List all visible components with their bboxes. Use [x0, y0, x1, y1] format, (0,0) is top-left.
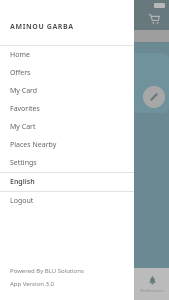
staticText: Places Nearby [10, 140, 57, 150]
button[interactable]: Cart [145, 10, 163, 28]
staticText: Home [10, 50, 30, 60]
staticText: App Version 3.0 [10, 280, 54, 288]
staticText: Notifications [140, 288, 164, 293]
button[interactable]: Settings [0, 154, 134, 172]
staticText: English [10, 177, 35, 187]
button[interactable]: Edit [143, 86, 165, 108]
button[interactable]: My Card [0, 82, 134, 100]
staticText: My Cart [10, 122, 36, 132]
staticText: Offers [10, 68, 31, 78]
staticText: AMINOU GARBA [10, 22, 74, 32]
button[interactable]: Notifications [135, 275, 169, 293]
button[interactable]: Favorites [0, 100, 134, 118]
staticText: Powered By BLU Solutions [10, 267, 84, 275]
staticText: Logout [10, 196, 34, 206]
button[interactable]: Home [0, 46, 134, 64]
staticText: My Card [10, 86, 38, 96]
button[interactable]: My Cart [0, 118, 134, 136]
button[interactable]: Places Nearby [0, 136, 134, 154]
button[interactable]: Logout [0, 192, 134, 210]
staticText: Favorites [10, 104, 40, 114]
button[interactable]: English [0, 173, 134, 191]
staticText: Settings [10, 158, 37, 168]
button[interactable]: Offers [0, 64, 134, 82]
